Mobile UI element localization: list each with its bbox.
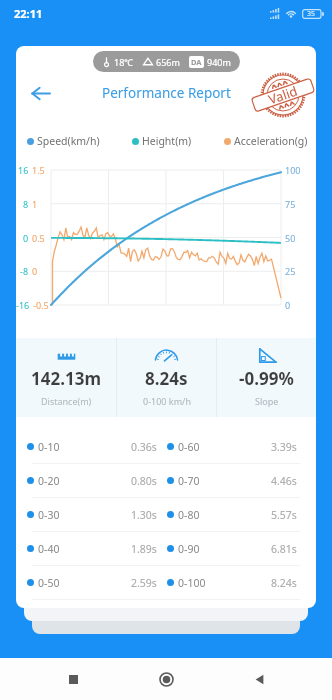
staticText: 100 — [285, 164, 301, 176]
staticText: Performance Report — [102, 84, 231, 102]
staticText: Acceleration(g) — [234, 134, 308, 148]
staticText: DA — [191, 57, 202, 67]
button[interactable]: 0-10 — [16, 430, 166, 463]
staticText: Speed(km/h) — [37, 134, 100, 148]
staticText: 0.36s — [131, 440, 157, 454]
button[interactable]: Back — [239, 659, 279, 699]
staticText: 0-30 — [38, 508, 60, 522]
staticText: -0.99% — [239, 367, 294, 390]
button[interactable]: 0-60 — [166, 430, 316, 463]
staticText: 0.5 — [32, 232, 45, 244]
staticText: 0-80 — [178, 508, 200, 522]
button[interactable]: 0-90 — [166, 532, 316, 565]
staticText: 35 — [307, 9, 316, 19]
staticText: 0-20 — [38, 474, 60, 488]
staticText: 0-10 — [38, 440, 60, 454]
staticText: 940m — [207, 56, 231, 68]
staticText: 4.46s — [271, 474, 297, 488]
staticText: 8.24s — [271, 576, 297, 590]
button[interactable]: 8.24s — [117, 338, 216, 417]
staticText: 1.89s — [131, 542, 157, 556]
staticText: 50 — [285, 232, 296, 244]
button[interactable]: Home — [146, 659, 186, 699]
staticText: Valid — [266, 82, 300, 108]
staticText: Distance(m) — [41, 395, 92, 407]
button[interactable]: 0-40 — [16, 532, 166, 565]
button[interactable]: 0-100 — [166, 566, 316, 599]
staticText: 0-40 — [38, 542, 60, 556]
button[interactable]: 0-70 — [166, 464, 316, 497]
staticText: 8.24s — [145, 367, 188, 390]
staticText: 16 — [18, 164, 29, 176]
staticText: 0-50 — [38, 576, 60, 590]
staticText: 0-90 — [178, 542, 200, 556]
staticText: 8 — [23, 198, 29, 210]
staticText: 0.80s — [131, 474, 157, 488]
staticText: 75 — [285, 198, 296, 210]
staticText: 656m — [156, 56, 180, 68]
staticText: 5.57s — [271, 508, 297, 522]
button[interactable]: -0.99% — [217, 338, 316, 417]
staticText: 18℃ — [114, 56, 134, 68]
staticText: 0-70 — [178, 474, 200, 488]
button[interactable]: 0-80 — [166, 498, 316, 531]
staticText: -8 — [20, 265, 29, 277]
staticText: 1.5 — [32, 164, 45, 176]
staticText: 1.30s — [131, 508, 157, 522]
staticText: Height(m) — [142, 134, 192, 148]
staticText: 0 — [285, 299, 291, 311]
button[interactable]: 0-30 — [16, 498, 166, 531]
button[interactable]: 0-50 — [16, 566, 166, 599]
staticText: 1 — [32, 198, 38, 210]
staticText: 6.81s — [271, 542, 297, 556]
staticText: -16 — [16, 299, 30, 311]
staticText: -0.5 — [33, 299, 49, 311]
staticText: 142.13m — [31, 367, 101, 390]
button[interactable]: Recents — [53, 659, 93, 699]
staticText: 25 — [285, 265, 296, 277]
staticText: 22:11 — [14, 6, 43, 21]
staticText: 0-60 — [178, 440, 200, 454]
staticText: 0 — [23, 232, 29, 244]
button[interactable]: 142.13m — [16, 338, 116, 417]
staticText: 2.59s — [131, 576, 157, 590]
button[interactable]: 0-20 — [16, 464, 166, 497]
staticText: 3.39s — [271, 440, 297, 454]
staticText: 0 — [32, 265, 38, 277]
staticText: 0-100 — [178, 576, 206, 590]
staticText: Slope — [255, 395, 279, 407]
button[interactable]: Back — [20, 73, 60, 113]
staticText: 0-100 km/h — [143, 395, 191, 407]
